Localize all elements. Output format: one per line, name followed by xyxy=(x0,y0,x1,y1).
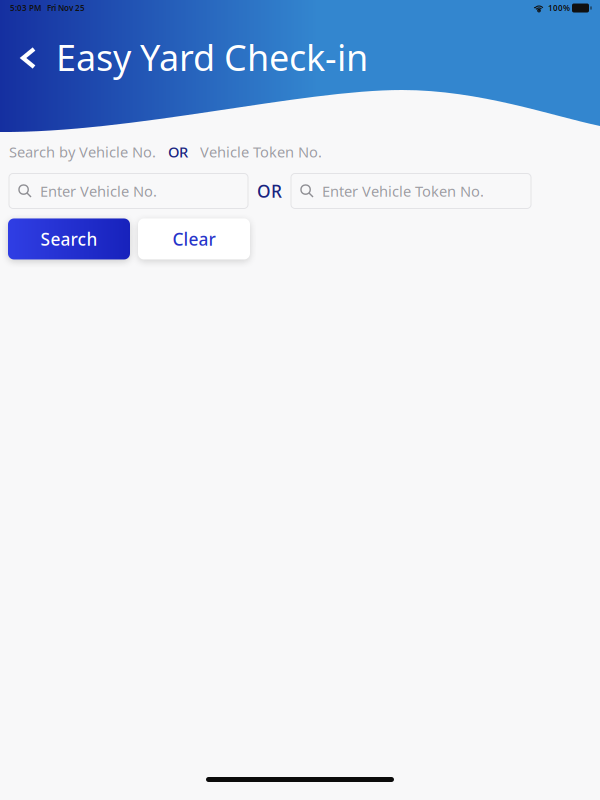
staticText: OR xyxy=(257,179,282,202)
button[interactable]: Search xyxy=(8,218,130,259)
staticText: 5:03 PM xyxy=(10,3,41,13)
staticText: OR xyxy=(156,142,200,161)
button[interactable]: Clear xyxy=(138,218,250,259)
staticText: 100% xyxy=(544,3,572,13)
staticText: Easy Yard Check-in xyxy=(56,33,368,81)
staticText: Vehicle Token No. xyxy=(200,142,322,161)
staticText: Enter Vehicle No. xyxy=(40,181,157,201)
button[interactable]: Back xyxy=(0,27,56,79)
staticText: Fri Nov 25 xyxy=(41,3,85,13)
staticText: Clear xyxy=(172,227,215,250)
staticText: Search xyxy=(40,227,97,250)
staticText: Search by Vehicle No. xyxy=(9,142,156,161)
staticText: Enter Vehicle Token No. xyxy=(322,181,484,201)
